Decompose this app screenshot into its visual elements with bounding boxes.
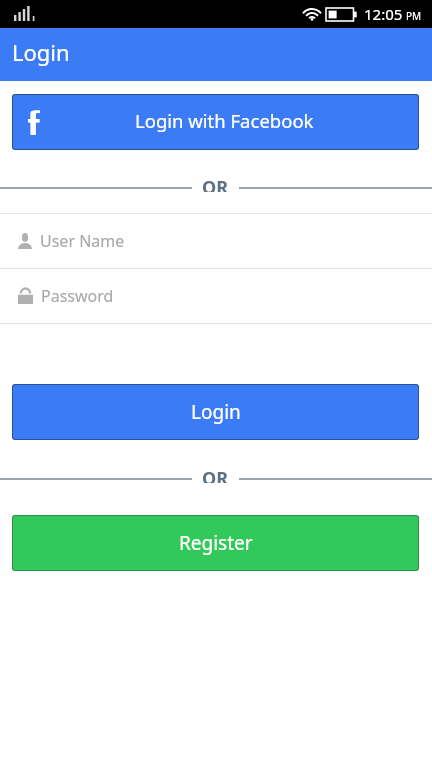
staticText: Login	[12, 37, 70, 67]
button[interactable]: Login	[13, 385, 418, 439]
staticText: Password	[41, 285, 114, 307]
staticText: OR	[202, 175, 229, 192]
button[interactable]: Password	[0, 269, 432, 323]
staticText: OR	[202, 466, 229, 483]
staticText: User Name	[40, 230, 125, 252]
staticText: Register	[179, 530, 253, 556]
staticText: Login with Facebook	[135, 108, 314, 133]
button[interactable]: User Name	[0, 214, 432, 268]
other: Facebook	[28, 110, 40, 135]
staticText: PM	[406, 9, 422, 23]
button[interactable]: Register	[13, 516, 418, 570]
button[interactable]: Login with Facebook	[13, 95, 418, 149]
staticText: Login	[191, 399, 241, 425]
staticText: 12:05	[364, 4, 403, 24]
